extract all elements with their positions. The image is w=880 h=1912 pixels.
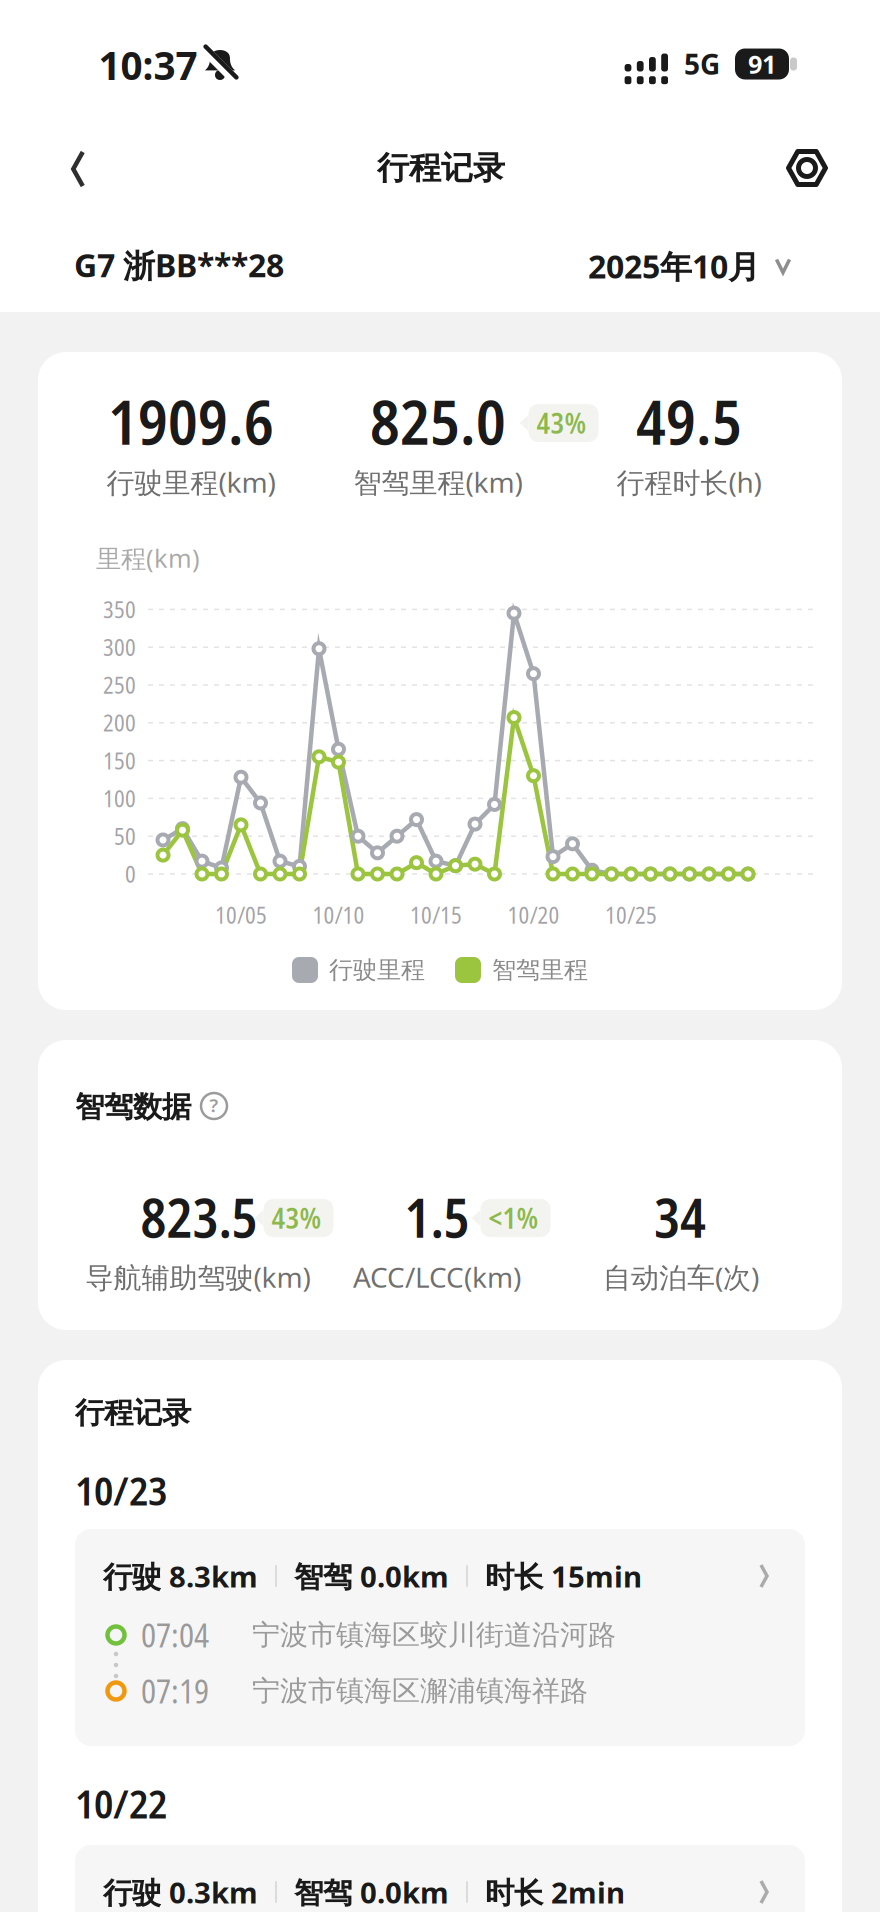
- staticText: 350: [103, 594, 136, 625]
- staticText: 49.5: [636, 379, 742, 463]
- staticText: 100: [103, 783, 136, 814]
- staticText: 825.0: [370, 379, 506, 463]
- staticText: 时长 2min: [485, 1872, 625, 1911]
- staticText: ?: [209, 1093, 218, 1117]
- staticText: 智驾里程: [492, 955, 588, 985]
- staticText: <1%: [488, 1199, 538, 1237]
- staticText: 智驾数据: [75, 1089, 191, 1125]
- staticText: 里程(km): [96, 541, 200, 575]
- staticText: 10/22: [75, 1776, 167, 1830]
- staticText: 10/05: [215, 900, 267, 930]
- staticText: 行驶里程: [329, 955, 425, 985]
- staticText: 43%: [271, 1199, 321, 1237]
- staticText: 自动泊车(次): [603, 1258, 759, 1296]
- button[interactable]: Back: [54, 138, 101, 200]
- staticText: 10/10: [312, 900, 364, 930]
- staticText: 10:37: [98, 39, 197, 91]
- staticText: 导航辅助驾驶(km): [85, 1258, 310, 1296]
- staticText: 1909.6: [108, 379, 274, 463]
- staticText: 200: [103, 707, 136, 738]
- staticText: 43%: [536, 404, 586, 442]
- staticText: 10/15: [410, 900, 462, 930]
- staticText: 10/20: [507, 900, 559, 930]
- button[interactable]: 行驶 8.3km: [75, 1529, 805, 1746]
- staticText: 5G: [684, 45, 720, 83]
- staticText: 07:19: [141, 1669, 209, 1713]
- staticText: 34: [654, 1181, 706, 1253]
- staticText: 宁波市镇海区蛟川街道沿河路: [252, 1618, 616, 1652]
- staticText: 250: [103, 670, 136, 700]
- staticText: ACC/LCC(km): [353, 1258, 521, 1296]
- button[interactable]: 行驶 0.3km: [75, 1845, 805, 1912]
- button[interactable]: 智驾数据说明: [196, 1088, 232, 1124]
- staticText: 时长 15min: [485, 1556, 642, 1595]
- staticText: 0: [125, 859, 136, 889]
- staticText: 50: [114, 821, 136, 852]
- staticText: 行程记录: [377, 148, 505, 188]
- staticText: 宁波市镇海区澥浦镇海祥路: [252, 1674, 588, 1708]
- staticText: 2025年10月: [588, 245, 760, 287]
- staticText: 150: [103, 745, 136, 776]
- staticText: 智驾里程(km): [353, 463, 522, 501]
- staticText: 300: [103, 632, 136, 663]
- staticText: G7 浙BB***28: [74, 244, 284, 286]
- staticText: 1.5: [404, 1181, 469, 1253]
- staticText: 823.5: [140, 1181, 257, 1253]
- staticText: 07:04: [141, 1613, 209, 1657]
- staticText: 行驶 8.3km: [103, 1556, 258, 1595]
- staticText: 91: [748, 47, 776, 81]
- staticText: 10/23: [75, 1463, 167, 1517]
- staticText: 智驾 0.0km: [294, 1872, 449, 1911]
- staticText: 行驶里程(km): [106, 463, 275, 501]
- staticText: 智驾 0.0km: [294, 1556, 449, 1595]
- button[interactable]: Settings: [780, 141, 834, 195]
- staticText: 行程记录: [75, 1395, 191, 1431]
- button[interactable]: 2025年10月: [588, 245, 796, 287]
- staticText: 行程时长(h): [616, 463, 761, 501]
- staticText: 10/25: [605, 900, 657, 930]
- staticText: 行驶 0.3km: [103, 1872, 258, 1911]
